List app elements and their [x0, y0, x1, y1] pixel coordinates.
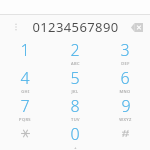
button[interactable]: 01234567890: [26, 18, 124, 36]
button[interactable]: More options: [8, 19, 24, 35]
staticText: PQRS: [19, 117, 31, 122]
staticText: MNO: [119, 89, 131, 94]
staticText: JKL: [71, 89, 79, 94]
staticText: 3: [120, 39, 130, 61]
staticText: +: [74, 145, 77, 150]
button[interactable]: 8: [50, 94, 100, 122]
button[interactable]: Backspace: [128, 18, 146, 36]
staticText: 5: [70, 67, 80, 89]
staticText: DEF: [121, 61, 130, 66]
button[interactable]: 7: [0, 94, 50, 122]
button[interactable]: 2: [50, 39, 100, 66]
staticText: 8: [70, 95, 80, 117]
button[interactable]: 1: [0, 39, 50, 66]
staticText: 4: [20, 67, 30, 89]
button[interactable]: [100, 122, 150, 150]
button[interactable]: [0, 122, 50, 150]
staticText: 01234567890: [32, 18, 119, 36]
button[interactable]: 6: [100, 66, 150, 94]
button[interactable]: 0: [50, 122, 100, 150]
staticText: 7: [20, 95, 30, 117]
staticText: 0: [70, 123, 80, 145]
staticText: ABC: [71, 61, 80, 66]
button[interactable]: 3: [100, 39, 150, 66]
button[interactable]: 4: [0, 66, 50, 94]
staticText: 1: [20, 39, 30, 61]
staticText: 9: [121, 95, 131, 117]
staticText: GHI: [21, 89, 30, 94]
button[interactable]: 5: [50, 66, 100, 94]
staticText: TUV: [71, 117, 80, 122]
staticText: 2: [70, 39, 80, 61]
staticText: 6: [120, 67, 130, 89]
button[interactable]: 9: [100, 94, 150, 122]
staticText: WXYZ: [119, 117, 132, 122]
